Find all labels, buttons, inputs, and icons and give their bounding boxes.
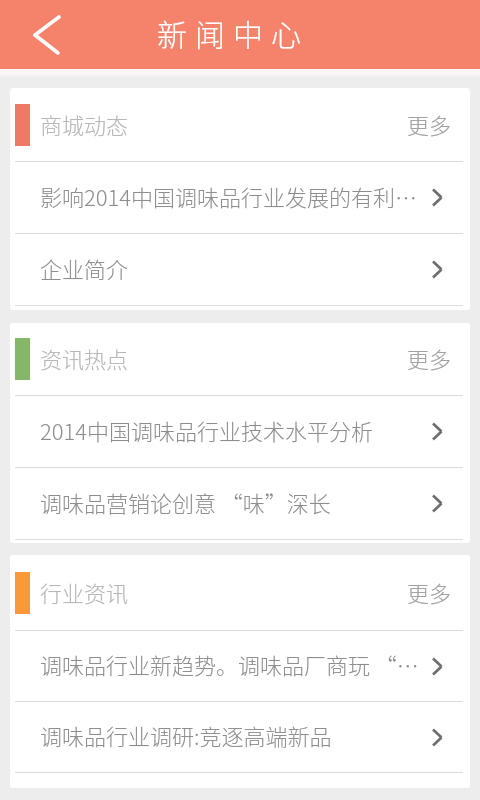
button[interactable]: 调味品行业新趋势。调味品厂商玩 “…: [10, 631, 470, 701]
staticText: 调味品营销论创意 “味”深长: [40, 486, 426, 518]
staticText: 更多: [407, 108, 452, 140]
button[interactable]: Back: [0, 0, 94, 69]
staticText: 新闻中心: [157, 11, 309, 54]
staticText: 影响2014中国调味品行业发展的有利…: [40, 180, 426, 212]
staticText: 调味品行业调研:竞逐高端新品: [40, 719, 426, 751]
staticText: 行业资讯: [40, 576, 129, 608]
staticText: 资讯热点: [40, 342, 129, 374]
button[interactable]: 商城动态: [10, 88, 470, 161]
button[interactable]: 2014中国调味品行业技术水平分析: [10, 396, 470, 467]
staticText: 2014中国调味品行业技术水平分析: [40, 414, 426, 446]
staticText: 更多: [407, 342, 452, 374]
button[interactable]: 资讯热点: [10, 323, 470, 395]
button[interactable]: 行业资讯: [10, 555, 470, 630]
staticText: 更多: [407, 576, 452, 608]
staticText: 企业简介: [40, 252, 426, 284]
button[interactable]: 企业简介: [10, 234, 470, 305]
button[interactable]: 调味品行业调研:竞逐高端新品: [10, 702, 470, 772]
button[interactable]: 调味品营销论创意 “味”深长: [10, 468, 470, 539]
staticText: 调味品行业新趋势。调味品厂商玩 “…: [40, 648, 426, 680]
button[interactable]: 影响2014中国调味品行业发展的有利…: [10, 162, 470, 233]
staticText: 商城动态: [40, 108, 129, 140]
